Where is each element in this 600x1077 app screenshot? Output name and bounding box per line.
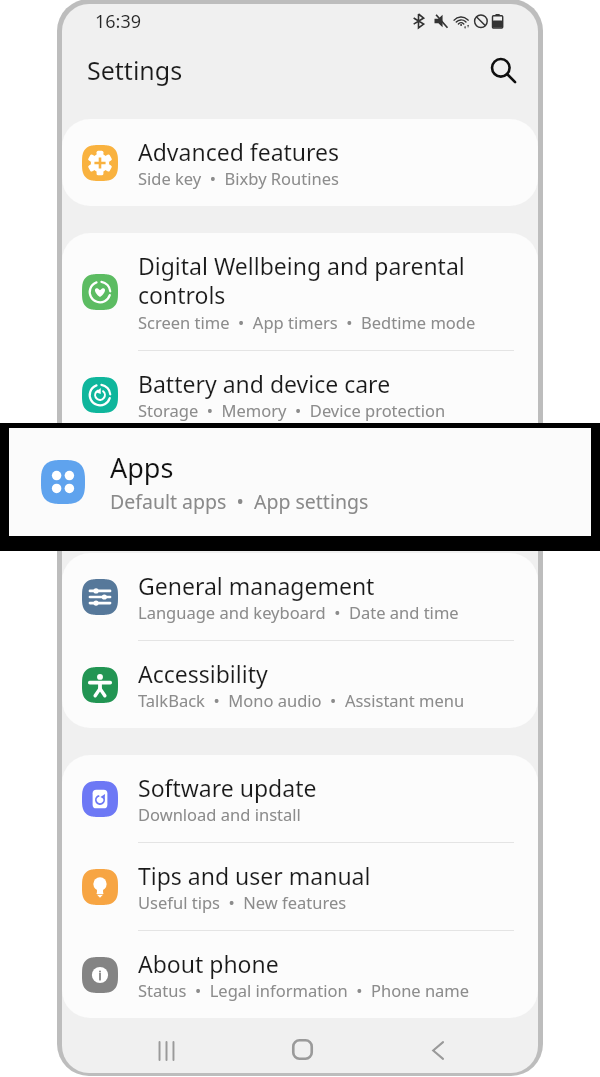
button[interactable]: Accessibility xyxy=(62,641,538,728)
staticText: Side key • Bixby Routines xyxy=(138,167,339,189)
button[interactable]: Recent apps xyxy=(146,1031,186,1071)
staticText: Apps xyxy=(110,449,174,486)
staticText: About phone xyxy=(138,948,279,979)
staticText: Status • Legal information • Phone name xyxy=(138,979,470,1001)
staticText: Apps xyxy=(138,456,193,487)
staticText: General management xyxy=(138,570,375,601)
staticText: TalkBack • Mono audio • Assistant menu xyxy=(138,689,465,711)
staticText: Default apps • App settings xyxy=(110,488,369,515)
button[interactable]: Battery and device care xyxy=(62,351,538,438)
button[interactable]: General management xyxy=(62,553,538,640)
button[interactable]: Apps xyxy=(62,439,538,526)
staticText: Screen time • App timers • Bedtime mode xyxy=(138,311,476,333)
staticText: Accessibility xyxy=(138,658,268,689)
staticText: Tips and user manual xyxy=(138,860,371,891)
button[interactable]: Digital Wellbeing and parental controls xyxy=(62,233,538,350)
staticText: Digital Wellbeing and parental controls xyxy=(138,250,486,311)
button[interactable]: Back xyxy=(418,1030,458,1070)
staticText: Battery and device care xyxy=(138,368,391,399)
staticText: Useful tips • New features xyxy=(138,891,347,913)
button[interactable]: Tips and user manual xyxy=(62,843,538,930)
staticText: Software update xyxy=(138,772,317,803)
button[interactable]: Home xyxy=(282,1029,322,1069)
button[interactable]: Apps xyxy=(9,428,591,536)
staticText: 16:39 xyxy=(95,9,142,34)
staticText: Advanced features xyxy=(138,136,340,167)
button[interactable]: Advanced features xyxy=(62,119,538,206)
staticText: Settings xyxy=(87,53,183,87)
staticText: Download and install xyxy=(138,803,301,825)
button[interactable]: Software update xyxy=(62,755,538,842)
button[interactable]: Search xyxy=(479,46,527,94)
button[interactable]: About phone xyxy=(62,931,538,1018)
staticText: Storage • Memory • Device protection xyxy=(138,399,446,421)
staticText: Language and keyboard • Date and time xyxy=(138,601,459,623)
staticText: Default apps • App settings xyxy=(138,487,357,509)
